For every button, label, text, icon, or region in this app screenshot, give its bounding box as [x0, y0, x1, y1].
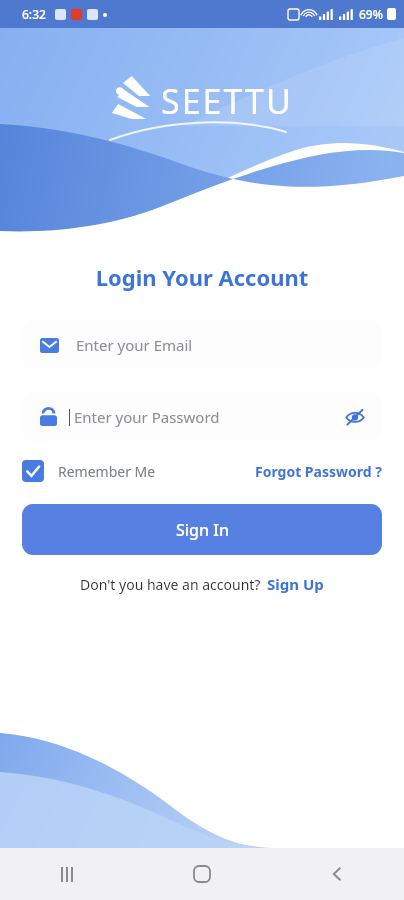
staticText: Sign Up	[267, 574, 324, 594]
button[interactable]: Sign Up	[267, 574, 324, 594]
staticText: Remember Me	[58, 462, 156, 481]
button[interactable]: Enter your Email	[22, 320, 382, 370]
staticText: 6:32	[22, 6, 46, 22]
button[interactable]: Back	[269, 848, 404, 900]
staticText: Enter your Email	[76, 335, 193, 355]
staticText: Forgot Password ?	[255, 462, 382, 481]
button[interactable]: Recent apps	[0, 848, 134, 900]
button[interactable]: Forgot Password ?	[255, 462, 382, 481]
button[interactable]: Home	[134, 848, 269, 900]
button[interactable]: Sign In	[22, 504, 382, 555]
staticText: SEETTU	[161, 78, 293, 124]
staticText: Login Your Account	[22, 262, 382, 292]
button[interactable]: Enter your Password	[22, 392, 382, 442]
staticText: 69%	[359, 6, 383, 22]
button[interactable]: Remember Me	[22, 460, 156, 482]
button[interactable]: Show password	[342, 404, 368, 430]
staticText: Enter your Password	[74, 407, 220, 427]
staticText: Don't you have an account?	[80, 575, 261, 594]
staticText: Sign In	[176, 519, 229, 541]
